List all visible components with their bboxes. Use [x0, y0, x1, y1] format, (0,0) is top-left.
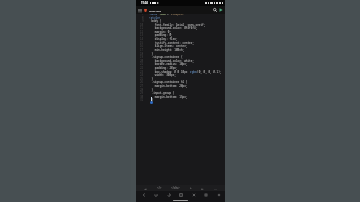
- staticText: background-color: white;: [145, 59, 194, 63]
- staticText: +: [190, 186, 192, 190]
- button[interactable]: Search in file: [188, 191, 199, 198]
- button[interactable]: Save: [175, 191, 186, 198]
- staticText: 8: [142, 16, 144, 20]
- staticText: 29: [140, 91, 144, 95]
- button[interactable]: Search: [212, 6, 218, 14]
- staticText: align-items: center;: [145, 44, 188, 48]
- staticText: 26: [140, 80, 144, 84]
- staticText: 13: [140, 33, 144, 37]
- staticText: 24: [140, 73, 144, 77]
- staticText: min-height: 100vh;: [145, 48, 185, 52]
- button[interactable]: Copy: [200, 191, 211, 198]
- button[interactable]: Open navigation menu: [136, 6, 143, 14]
- staticText: justify-content: center;: [145, 41, 194, 45]
- staticText: }: [145, 52, 154, 56]
- staticText: </>: [157, 186, 162, 190]
- staticText: 11: [140, 26, 144, 30]
- staticText: </div>: [171, 186, 180, 190]
- button[interactable]: +: [189, 185, 193, 191]
- staticText: 17: [140, 48, 144, 52]
- staticText: 27: [140, 84, 144, 88]
- staticText: }: [145, 77, 154, 81]
- staticText: 15: [140, 41, 144, 45]
- staticText: 20: [140, 59, 144, 63]
- button[interactable]: Add: [213, 191, 224, 198]
- staticText: ↔: [201, 187, 204, 190]
- button[interactable]: ⇥: [143, 186, 148, 191]
- staticText: margin-bottom: 15px;: [145, 95, 188, 99]
- staticText: "viewport": [169, 14, 186, 16]
- staticText: (0, 0, 0, 0.1);: [197, 70, 222, 74]
- button[interactable]: </div>: [170, 185, 181, 191]
- staticText: 31: [140, 98, 144, 102]
- staticText: 19: [140, 55, 144, 59]
- staticText: 14: [140, 37, 144, 41]
- staticText: display: flex;: [145, 37, 178, 41]
- staticText: .signup-container h1 {: [145, 80, 188, 84]
- staticText: box-shadow: 0 0 10px: [145, 70, 190, 74]
- staticText: 28: [140, 88, 144, 92]
- staticText: font-family: Arial, sans-serif;: [145, 23, 206, 27]
- staticText: 12: [140, 30, 144, 34]
- staticText: }: [145, 98, 154, 102]
- staticText: margin-bottom: 20px;: [145, 84, 188, 88]
- button[interactable]: Back: [138, 191, 149, 198]
- staticText: index.html: [149, 9, 162, 12]
- staticText: 9: [142, 19, 144, 23]
- staticText: padding: 0;: [145, 33, 173, 37]
- staticText: 23: [140, 70, 144, 74]
- staticText: width: 300px;: [145, 73, 176, 77]
- staticText: 22: [140, 66, 144, 70]
- button[interactable]: Undo: [163, 191, 174, 198]
- staticText: .input-group {: [145, 91, 175, 95]
- button[interactable]: Redo: [150, 191, 161, 198]
- staticText: 16: [140, 44, 144, 48]
- staticText: ⋯: [214, 187, 217, 190]
- staticText: <style>: [149, 16, 161, 20]
- staticText: =: [167, 14, 169, 16]
- staticText: rgba: [190, 70, 197, 74]
- staticText: 10: [140, 23, 144, 27]
- staticText: name: [158, 14, 167, 16]
- staticText: <meta: [149, 14, 158, 16]
- staticText: border-radius: 10px;: [145, 62, 188, 66]
- staticText: 11:24: [141, 1, 148, 5]
- button[interactable]: ⋯: [213, 186, 218, 191]
- staticText: padding: 20px;: [145, 66, 178, 70]
- button[interactable]: ↔: [200, 186, 205, 191]
- staticText: margin: 0;: [145, 30, 172, 34]
- button[interactable]: </>: [156, 185, 163, 191]
- staticText: background-color: #f4f4f4;: [145, 26, 198, 30]
- staticText: 18: [140, 52, 144, 56]
- staticText: 25: [140, 77, 144, 81]
- staticText: .signup-container {: [145, 55, 183, 59]
- staticText: 7: [142, 14, 144, 16]
- staticText: ⇥: [144, 187, 147, 190]
- staticText: 30: [140, 95, 144, 99]
- button[interactable]: Run file: [218, 6, 224, 14]
- staticText: 21: [140, 62, 144, 66]
- staticText: }: [145, 88, 154, 92]
- staticText: body {: [145, 19, 162, 23]
